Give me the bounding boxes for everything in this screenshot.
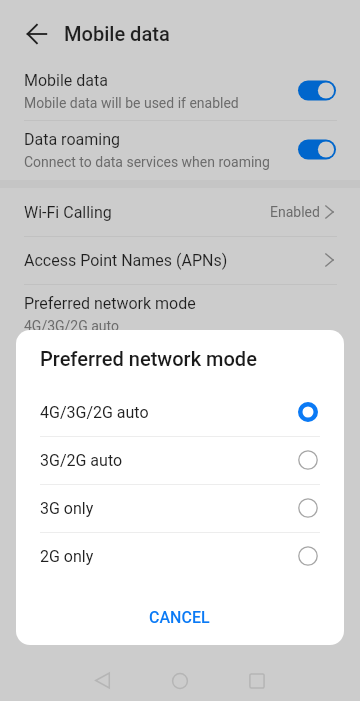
staticText: Preferred network mode — [24, 294, 196, 313]
button[interactable]: Access Point Names (APNs) — [0, 236, 360, 284]
button[interactable]: Navigate up — [13, 10, 61, 58]
staticText: Access Point Names (APNs) — [24, 251, 228, 270]
button[interactable]: CANCEL — [141, 601, 218, 634]
staticText: 3G/2G auto — [40, 451, 123, 470]
button[interactable]: Mobile data — [0, 61, 360, 120]
staticText: 3G only — [40, 499, 94, 518]
staticText: 2G only — [40, 547, 94, 566]
staticText: Mobile data — [64, 22, 170, 45]
button[interactable]: 2G only — [16, 532, 344, 580]
button[interactable]: 3G/2G auto — [16, 436, 344, 484]
staticText: Enabled — [270, 204, 320, 220]
staticText: Data roaming — [24, 130, 120, 149]
staticText: CANCEL — [149, 608, 210, 627]
button[interactable]: Preferred network mode — [0, 284, 360, 343]
button[interactable]: 4G/3G/2G auto — [16, 388, 344, 436]
staticText: Wi-Fi Calling — [24, 203, 112, 222]
button[interactable]: Data roaming — [0, 120, 360, 179]
button[interactable]: Wi-Fi Calling — [0, 188, 360, 236]
button[interactable]: Back — [80, 658, 125, 701]
button[interactable]: Home — [157, 658, 202, 701]
staticText: 4G/3G/2G auto — [40, 403, 149, 422]
button[interactable]: Recent apps — [234, 658, 279, 701]
staticText: Mobile data will be used if enabled — [24, 95, 239, 111]
staticText: Mobile data — [24, 71, 108, 90]
staticText: Preferred network mode — [40, 347, 257, 370]
staticText: 4G/3G/2G auto — [24, 318, 119, 334]
button[interactable]: 3G only — [16, 484, 344, 532]
staticText: Connect to data services when roaming — [24, 154, 270, 170]
